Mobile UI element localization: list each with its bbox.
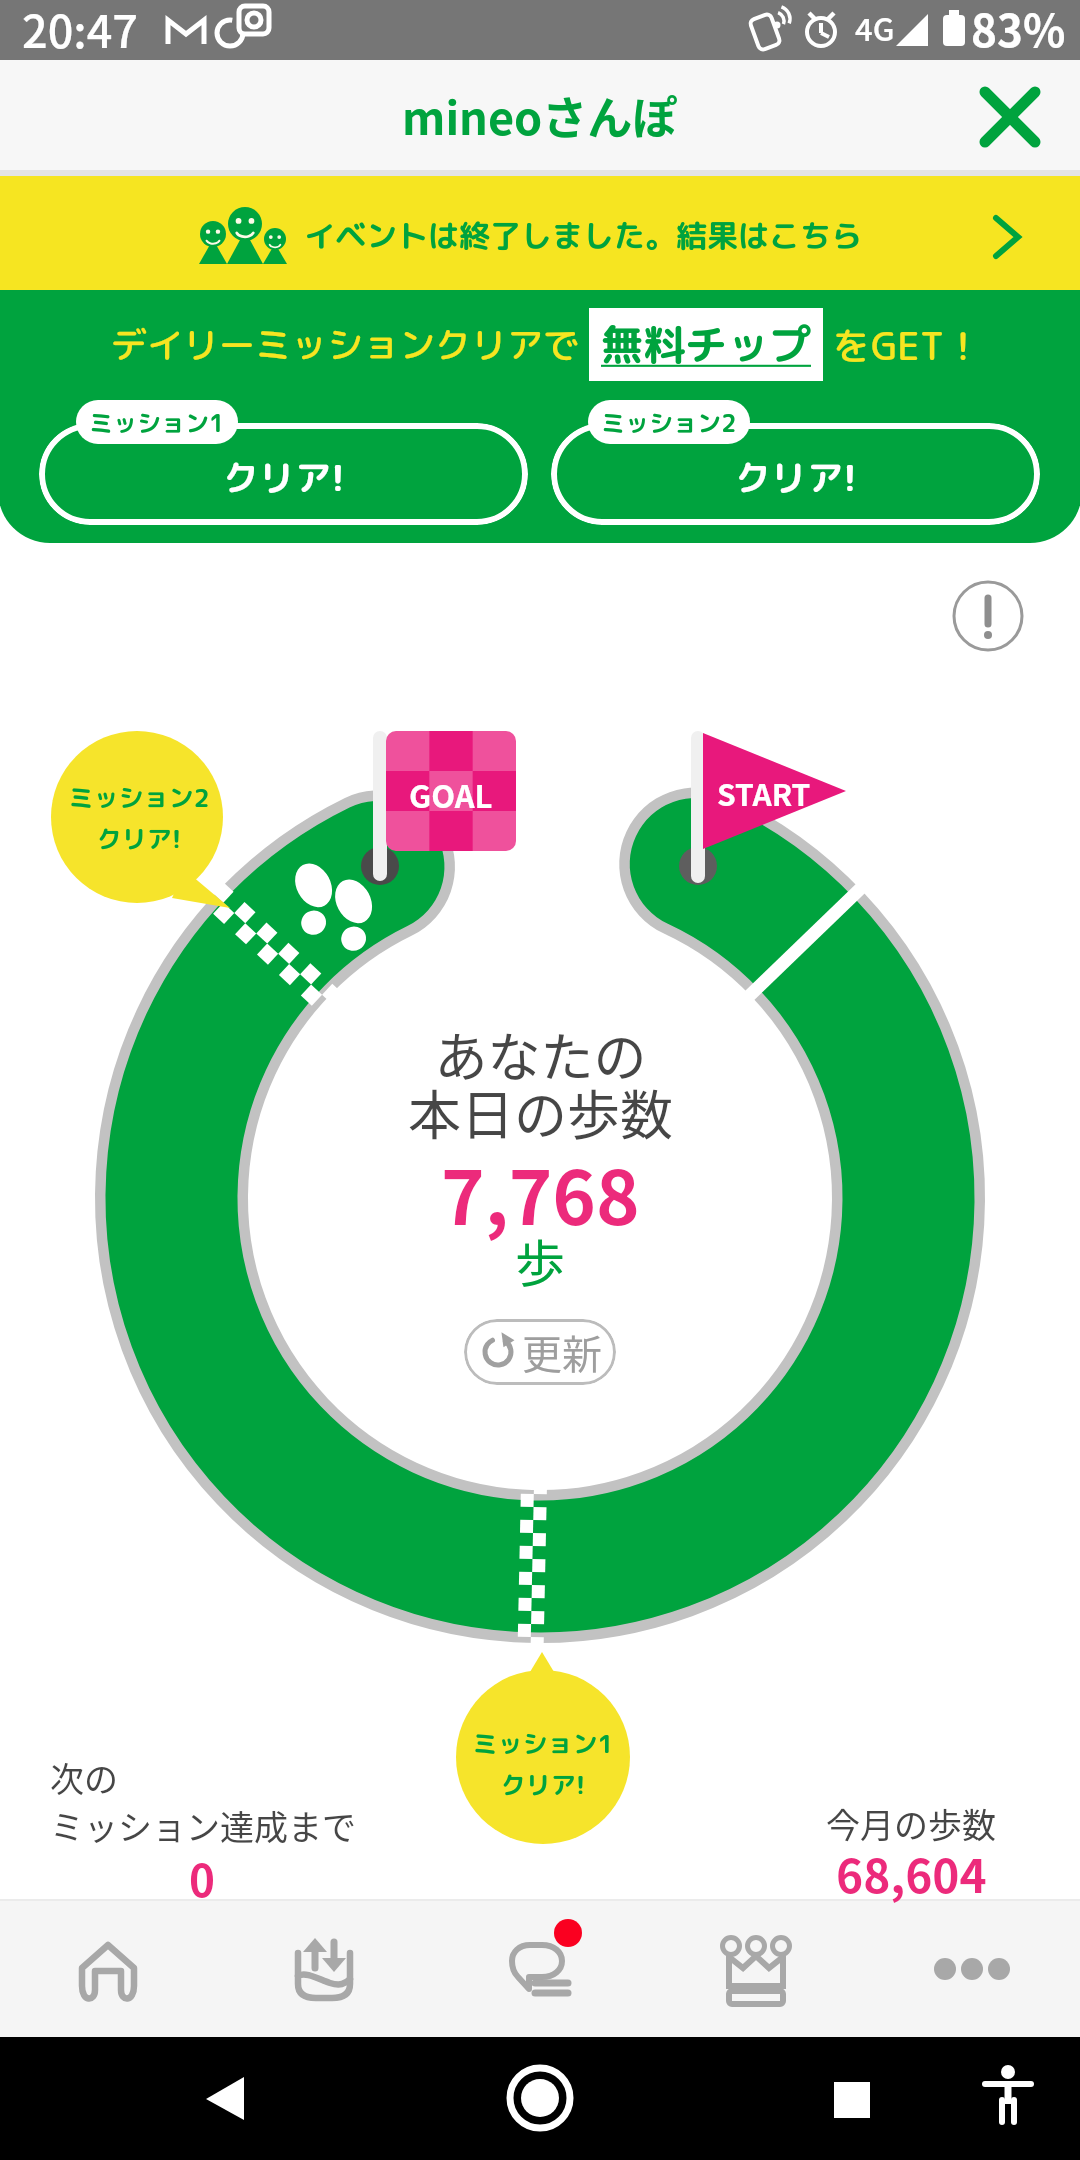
staticText: 次の ミッション達成まで (50, 1753, 356, 1850)
staticText: ミッション1 クリア! (472, 1726, 614, 1802)
staticText: クリア! (735, 452, 857, 502)
staticText: 83% (971, 0, 1066, 60)
staticText: 0 (189, 1846, 215, 1910)
staticText: mineoさんぽ (402, 83, 678, 148)
staticText: 無料チップ (601, 315, 812, 374)
staticText: 68,604 (836, 1840, 987, 1907)
button[interactable]: Info (952, 580, 1024, 652)
staticText: ミッション2 クリア! (68, 780, 210, 856)
staticText: 7,768 (441, 1139, 640, 1246)
button[interactable]: Chat (432, 1901, 648, 2037)
staticText: GOAL (409, 772, 493, 817)
button[interactable]: Data (216, 1901, 432, 2037)
staticText: 歩 (515, 1224, 565, 1296)
staticText: イベントは終了しました。結果はこちら (304, 214, 862, 257)
button[interactable]: Close (952, 62, 1068, 172)
staticText: 20:47 (22, 0, 139, 61)
button[interactable]: クリア! (551, 423, 1040, 525)
button[interactable]: クリア! (39, 423, 528, 525)
button[interactable]: Home (0, 1901, 216, 2037)
staticText: ミッション2 (601, 406, 737, 439)
button[interactable]: 更新 (464, 1319, 616, 1385)
staticText: デイリーミッションクリアで (111, 319, 580, 369)
staticText: クリア! (223, 452, 345, 502)
staticText: ミッション1 (89, 406, 225, 439)
staticText: 今月の歩数 (826, 1799, 996, 1848)
staticText: START (717, 771, 811, 814)
staticText: 更新 (522, 1323, 602, 1381)
button[interactable]: Rewards (648, 1901, 864, 2037)
button[interactable]: イベントは終了しました。結果はこちら (0, 176, 1080, 297)
staticText: 4G (855, 5, 895, 50)
staticText: をGET！ (833, 319, 983, 372)
staticText: あなたの 本日の歩数 (408, 1016, 673, 1151)
button[interactable]: More (864, 1901, 1080, 2037)
